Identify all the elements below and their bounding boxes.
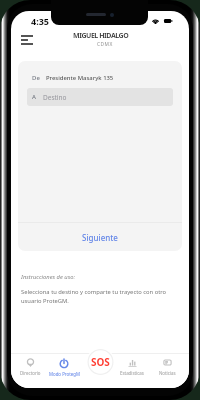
button[interactable]: De (27, 72, 173, 84)
button[interactable]: Directorio (11, 354, 52, 380)
staticText: De (32, 74, 40, 82)
button[interactable]: Menu (17, 30, 37, 50)
staticText: A (32, 93, 36, 101)
button[interactable]: Modo ProtegM (42, 354, 86, 380)
staticText: Instrucciones de uso: (21, 273, 75, 281)
staticText: CDMX (97, 41, 113, 48)
button[interactable]: Estadisticas (110, 354, 154, 380)
staticText: Modo ProtegM (49, 371, 80, 377)
staticText: Siguiente (82, 232, 118, 243)
staticText: Directorio (20, 370, 41, 376)
staticText: Noticias (159, 370, 176, 376)
staticText: Destino (43, 93, 67, 102)
staticText: Presidente Masaryk 135 (46, 74, 114, 82)
staticText: Estadisticas (120, 370, 144, 376)
button[interactable]: Siguiente (18, 223, 182, 251)
staticText: MIGUEL HIDALGO (73, 31, 129, 41)
button[interactable]: Noticias (145, 354, 189, 380)
staticText: 4:35 (31, 15, 49, 27)
staticText: Selecciona tu destino y comparte tu tray… (21, 288, 177, 305)
button[interactable]: SOS (86, 349, 115, 375)
staticText: SOS (91, 355, 110, 369)
button[interactable]: A (27, 88, 173, 106)
